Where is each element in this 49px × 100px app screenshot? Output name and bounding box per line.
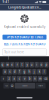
button[interactable]: SELECT QUICKSCREEN KEYBOARD bbox=[2, 43, 46, 46]
staticText: u bbox=[31, 63, 33, 66]
staticText: Keyboard enabled successfully bbox=[4, 25, 45, 29]
button[interactable]: r bbox=[15, 62, 19, 68]
button[interactable]: b bbox=[27, 76, 32, 82]
button[interactable]: q bbox=[0, 62, 5, 68]
button[interactable]: u bbox=[30, 62, 34, 68]
button[interactable]: k bbox=[37, 69, 41, 75]
staticText: e bbox=[11, 63, 13, 66]
staticText: ☺ bbox=[11, 84, 14, 87]
button[interactable]: y bbox=[25, 62, 29, 68]
staticText: b bbox=[29, 77, 31, 80]
button[interactable]: a bbox=[3, 69, 7, 75]
button[interactable]: f bbox=[17, 69, 22, 75]
button[interactable]: 123 bbox=[3, 83, 10, 89]
staticText: 9:41 bbox=[2, 0, 9, 4]
staticText: q bbox=[2, 63, 4, 66]
button[interactable]: m bbox=[38, 76, 42, 82]
staticText: k bbox=[39, 70, 40, 73]
staticText: l bbox=[44, 70, 45, 73]
button[interactable]: i bbox=[34, 62, 39, 68]
staticText: h bbox=[28, 70, 30, 73]
button[interactable]: g bbox=[22, 69, 27, 75]
button[interactable]: o bbox=[39, 62, 44, 68]
button[interactable]: OPEN KEYBOARD SETTINGS bbox=[2, 35, 46, 40]
button[interactable]: h bbox=[27, 69, 32, 75]
staticText: d bbox=[14, 70, 16, 73]
staticText: a bbox=[4, 70, 5, 73]
staticText: c bbox=[19, 77, 20, 80]
staticText: return bbox=[38, 85, 43, 87]
staticText: f bbox=[19, 70, 20, 73]
staticText: i bbox=[36, 63, 37, 66]
staticText: g bbox=[23, 70, 25, 73]
staticText: SELECT QUICKSCREEN KEYBOARD bbox=[3, 42, 45, 46]
staticText: o bbox=[40, 63, 42, 66]
button[interactable]: x bbox=[12, 76, 16, 82]
staticText: r bbox=[17, 63, 18, 66]
staticText: y bbox=[26, 63, 27, 66]
staticText: x bbox=[14, 77, 15, 80]
button[interactable]: l bbox=[42, 69, 46, 75]
button[interactable]: ☺ bbox=[10, 83, 14, 89]
button[interactable]: e bbox=[10, 62, 14, 68]
staticText: I bbox=[8, 56, 9, 60]
staticText: space bbox=[22, 85, 27, 87]
staticText: p bbox=[45, 63, 47, 66]
staticText: v bbox=[24, 77, 25, 80]
button[interactable]: s bbox=[7, 69, 12, 75]
staticText: t bbox=[22, 63, 23, 66]
button[interactable]: p bbox=[44, 62, 48, 68]
button[interactable]: n bbox=[33, 76, 37, 82]
button[interactable]: w bbox=[5, 62, 10, 68]
staticText: Try it out here bbox=[4, 50, 24, 54]
button[interactable]: z bbox=[7, 76, 11, 82]
staticText: Congrats Quickscreen Keyboard bbox=[8, 6, 41, 9]
staticText: 123 bbox=[5, 85, 8, 87]
button[interactable]: d bbox=[12, 69, 17, 75]
button[interactable]: space bbox=[15, 83, 35, 89]
button[interactable]: return bbox=[36, 83, 46, 89]
button[interactable]: t bbox=[20, 62, 24, 68]
button[interactable]: v bbox=[22, 76, 27, 82]
button[interactable]: ⇧ bbox=[0, 76, 6, 82]
staticText: z bbox=[8, 77, 9, 80]
staticText: j bbox=[34, 70, 35, 73]
button[interactable]: j bbox=[32, 69, 37, 75]
staticText: ⇧ bbox=[2, 77, 4, 80]
staticText: n bbox=[34, 77, 36, 80]
button[interactable]: ⌫ bbox=[43, 76, 49, 82]
staticText: s bbox=[9, 70, 10, 73]
staticText: m bbox=[39, 77, 41, 80]
staticText: ⌫ bbox=[44, 77, 48, 80]
staticText: w bbox=[6, 63, 8, 66]
button[interactable]: c bbox=[17, 76, 22, 82]
staticText: OPEN KEYBOARD SETTINGS bbox=[6, 35, 42, 39]
